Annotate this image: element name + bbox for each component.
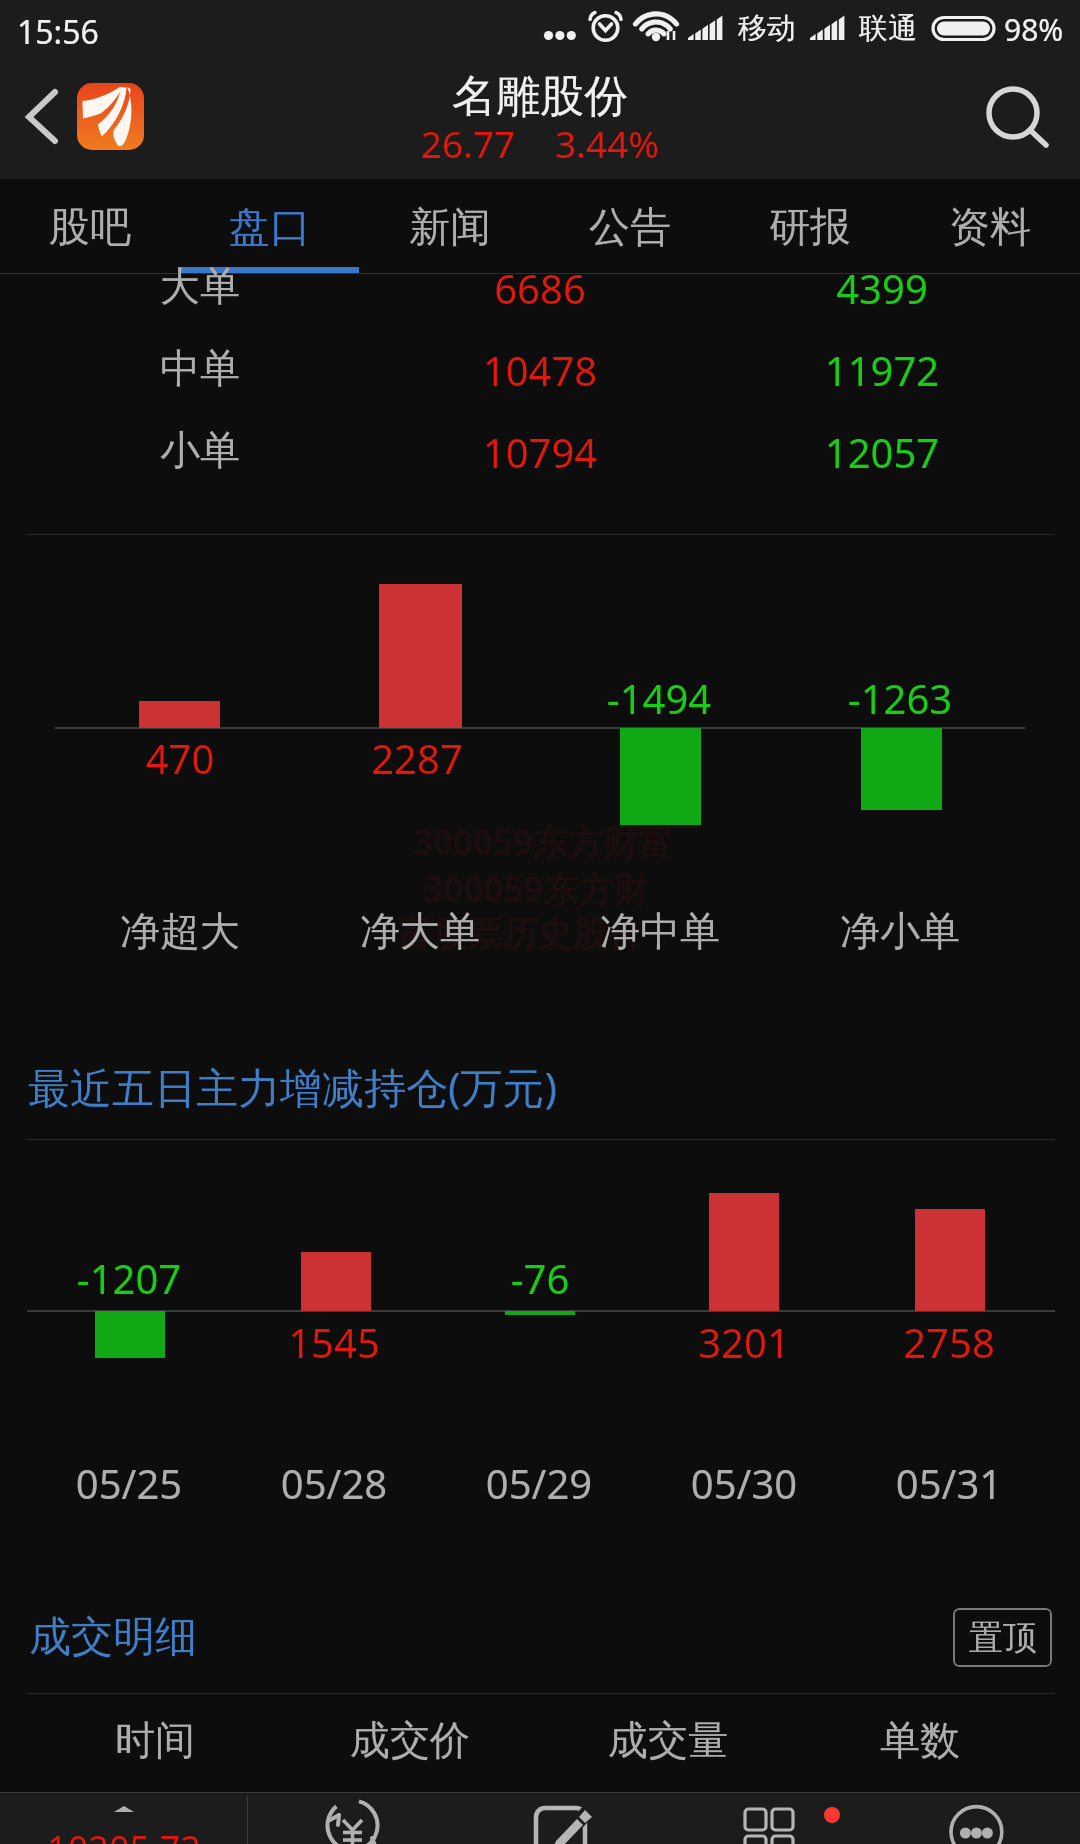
staticText: 11972 <box>732 343 1032 397</box>
staticText: 资料 <box>949 202 1031 254</box>
staticText: 10794 <box>390 425 690 479</box>
staticText: 470 <box>80 731 280 785</box>
button[interactable]: 股吧 <box>0 180 180 272</box>
staticText: 300059东方财 <box>186 865 886 913</box>
staticText: 净小单 <box>790 906 1010 956</box>
staticText: 98% <box>1004 9 1064 50</box>
staticText: 大单 <box>100 261 300 311</box>
button[interactable]: App icon <box>77 83 144 150</box>
staticText: 成交价 <box>285 1715 535 1765</box>
staticText: 成交明细 <box>29 1611 197 1664</box>
staticText: 净中单 <box>550 906 770 956</box>
button[interactable]: 公告 <box>540 180 720 272</box>
staticText: 15:56 <box>17 10 99 54</box>
staticText: 05/25 <box>19 1456 239 1510</box>
button[interactable]: 新闻 <box>360 180 540 272</box>
staticText: 股吧 <box>49 202 131 254</box>
staticText: 联通 <box>859 10 917 47</box>
staticText: 时间 <box>30 1715 280 1765</box>
button[interactable]: Search <box>965 72 1061 168</box>
staticText: 05/30 <box>634 1456 854 1510</box>
staticText: 富股票历史股价 <box>170 912 870 956</box>
button[interactable]: 置顶 <box>953 1608 1052 1667</box>
button[interactable]: Trade <box>290 1792 410 1844</box>
staticText: 2758 <box>839 1315 1059 1369</box>
staticText: 4399 <box>732 261 1032 315</box>
button[interactable] <box>0 1792 247 1844</box>
button[interactable]: Back <box>4 72 76 168</box>
staticText: 小单 <box>100 425 300 475</box>
button[interactable]: 研报 <box>720 180 900 272</box>
staticText: 盘口 <box>229 202 311 254</box>
staticText: 05/31 <box>839 1456 1059 1510</box>
button[interactable]: More apps <box>720 1792 850 1844</box>
staticText: 新闻 <box>409 202 491 254</box>
staticText: 单数 <box>795 1715 1045 1765</box>
staticText: 净大单 <box>310 906 530 956</box>
staticText: 05/29 <box>429 1456 649 1510</box>
button[interactable]: Compose <box>505 1792 615 1844</box>
staticText: 成交量 <box>543 1715 793 1765</box>
staticText: 名雕股份 <box>340 69 740 124</box>
staticText: 12057 <box>732 425 1032 479</box>
staticText: -76 <box>430 1251 650 1305</box>
staticText: -1263 <box>790 671 1010 725</box>
staticText: 3.44% <box>507 118 707 168</box>
staticText: -1494 <box>549 671 769 725</box>
staticText: 净超大 <box>70 906 290 956</box>
button[interactable]: More <box>920 1792 1035 1844</box>
staticText: 最近五日主力增减持仓(万元) <box>28 1058 558 1115</box>
staticText: 10478 <box>390 343 690 397</box>
staticText: 10205.72 <box>4 1824 244 1844</box>
staticText: 1545 <box>224 1315 444 1369</box>
staticText: 中单 <box>100 343 300 393</box>
staticText: 移动 <box>738 10 796 47</box>
staticText: 公告 <box>589 202 671 254</box>
button[interactable]: 盘口 <box>180 180 360 272</box>
staticText: 3201 <box>634 1315 854 1369</box>
staticText: 6686 <box>390 261 690 315</box>
staticText: -1207 <box>19 1251 239 1305</box>
staticText: 300059东方财富 <box>193 818 893 866</box>
staticText: 2287 <box>317 731 517 785</box>
staticText: 05/28 <box>224 1456 444 1510</box>
staticText: 置顶 <box>969 1616 1037 1659</box>
staticText: 研报 <box>769 202 851 254</box>
staticText: 26.77 <box>368 118 568 168</box>
button[interactable]: 资料 <box>900 180 1080 272</box>
